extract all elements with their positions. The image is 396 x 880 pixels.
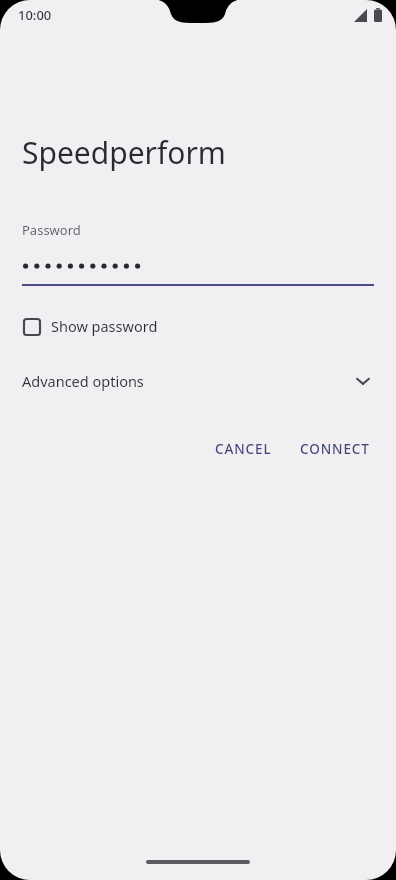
button[interactable]: CONNECT xyxy=(290,432,380,466)
button[interactable]: CANCEL xyxy=(205,432,282,466)
staticText: Show password xyxy=(51,316,158,336)
staticText: 10:00 xyxy=(18,6,52,24)
button[interactable]: Advanced options xyxy=(0,364,396,398)
staticText: CONNECT xyxy=(300,440,370,458)
staticText: Speedperform xyxy=(22,132,226,173)
staticText: Password xyxy=(22,221,81,239)
other: Expand advanced options xyxy=(352,370,374,392)
staticText: CANCEL xyxy=(215,440,272,458)
button[interactable]: Show password xyxy=(22,312,158,340)
staticText: Advanced options xyxy=(22,371,144,391)
button[interactable] xyxy=(22,254,374,278)
